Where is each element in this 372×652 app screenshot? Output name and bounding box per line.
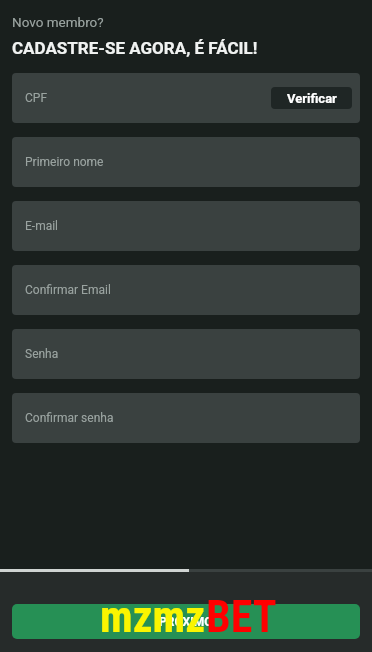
staticText: Verificar	[287, 91, 337, 106]
button[interactable]: Primeiro nome	[12, 137, 360, 187]
staticText: PRÓXIMO	[159, 615, 213, 629]
staticText: BET	[206, 591, 277, 643]
button[interactable]: PRÓXIMO	[12, 604, 360, 639]
button[interactable]: CPF	[12, 73, 360, 123]
staticText: CPF	[25, 91, 48, 105]
staticText: mzmz	[100, 591, 206, 643]
staticText: Primeiro nome	[25, 155, 104, 169]
button[interactable]: Confirmar Email	[12, 265, 360, 315]
staticText: Senha	[25, 347, 59, 361]
button[interactable]: Senha	[12, 329, 360, 379]
button[interactable]: E-mail	[12, 201, 360, 251]
staticText: Confirmar Email	[25, 283, 111, 297]
staticText: Confirmar senha	[25, 411, 114, 425]
staticText: Novo membro?	[12, 14, 104, 30]
button[interactable]: Confirmar senha	[12, 393, 360, 443]
staticText: CADASTRE-SE AGORA, É FÁCIL!	[12, 38, 258, 58]
button[interactable]: Verificar	[271, 87, 352, 109]
staticText: E-mail	[25, 219, 59, 233]
